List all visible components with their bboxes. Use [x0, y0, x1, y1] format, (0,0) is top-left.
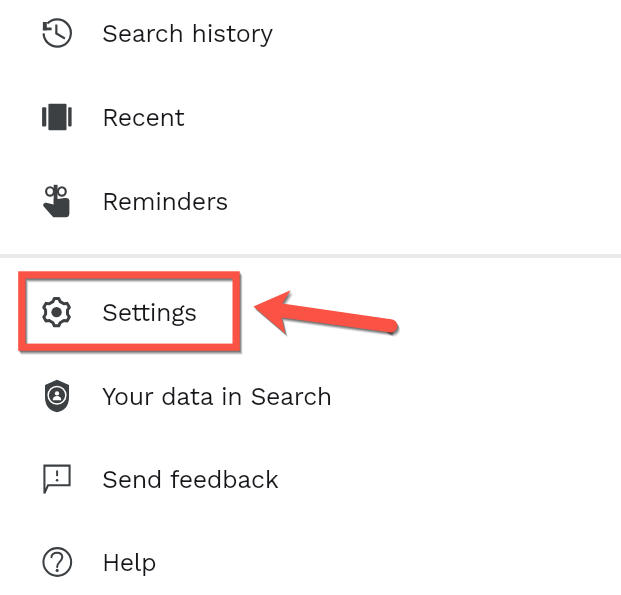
button[interactable]: Help [0, 524, 621, 595]
staticText: Send feedback [102, 465, 279, 494]
staticText: Search history [102, 19, 273, 48]
staticText: Recent [102, 103, 185, 132]
staticText: Help [102, 548, 157, 577]
staticText: Your data in Search [102, 382, 332, 411]
button[interactable]: Search history [0, 0, 621, 71]
button[interactable]: Recent [0, 79, 621, 155]
button[interactable]: Your data in Search [0, 358, 621, 434]
staticText: Settings [102, 298, 197, 327]
button[interactable]: Reminders [0, 163, 621, 239]
button[interactable]: Settings [0, 274, 621, 350]
staticText: Reminders [102, 187, 228, 216]
button[interactable]: Send feedback [0, 441, 621, 517]
